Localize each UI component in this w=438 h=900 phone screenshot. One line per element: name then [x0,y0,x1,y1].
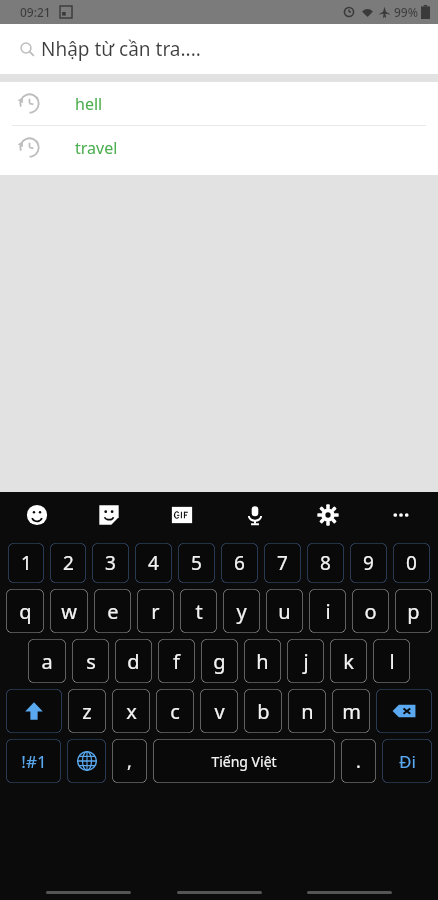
button[interactable]: o [352,589,389,633]
staticText: e [107,598,119,625]
button[interactable]: !#1 [6,739,61,783]
staticText: w [61,598,77,625]
button[interactable]: b [244,689,282,733]
button[interactable]: 8 [307,543,344,583]
button[interactable]: GIF [165,498,199,532]
staticText: a [41,648,53,675]
button[interactable]: y [223,589,260,633]
staticText: b [257,698,270,725]
button[interactable]: Emoji [20,498,54,532]
staticText: , [127,749,132,774]
staticText: x [126,698,137,725]
staticText: 99% [394,4,418,20]
staticText: r [151,598,160,625]
staticText: o [364,598,377,625]
staticText: m [342,698,361,725]
staticText: 1 [21,550,32,576]
button[interactable]: 1 [8,543,44,583]
staticText: 3 [105,550,116,576]
button[interactable]: Navigation [177,891,262,894]
staticText: d [127,648,140,675]
staticText: . [356,749,361,774]
staticText: f [173,648,180,675]
staticText: h [256,648,269,675]
other: History [18,92,41,115]
button[interactable]: More options [384,498,418,532]
button[interactable]: Tiếng Việt [153,739,335,783]
staticText: 09:21 [20,4,51,20]
staticText: Tiếng Việt [211,752,277,771]
staticText: c [170,698,180,725]
staticText: p [407,598,420,625]
staticText: g [213,648,226,675]
button[interactable]: 5 [178,543,215,583]
button[interactable]: Nhập từ cần tra.... [0,24,438,74]
button[interactable]: g [201,639,238,683]
button[interactable]: k [330,639,367,683]
button[interactable]: v [200,689,238,733]
staticText: q [19,598,32,625]
button[interactable]: Đi [382,739,432,783]
button[interactable]: s [72,639,109,683]
button[interactable]: a [28,639,66,683]
button[interactable]: Voice input [238,498,272,532]
staticText: v [214,698,225,725]
staticText: 4 [148,550,159,576]
button[interactable]: 0 [393,543,430,583]
button[interactable]: c [156,689,194,733]
staticText: hell [75,93,103,115]
button[interactable]: , [112,739,147,783]
button[interactable]: 4 [135,543,172,583]
staticText: 0 [406,550,417,576]
button[interactable]: Stickers [92,498,126,532]
button[interactable]: x [112,689,150,733]
button[interactable]: w [50,589,88,633]
staticText: i [325,598,331,625]
button[interactable]: u [266,589,303,633]
button[interactable]: Backspace [376,689,432,733]
button[interactable]: 6 [221,543,258,583]
staticText: 7 [277,550,288,576]
button[interactable]: q [6,589,44,633]
button[interactable]: n [288,689,326,733]
button[interactable]: h [244,639,281,683]
button[interactable]: p [395,589,432,633]
button[interactable]: 3 [92,543,129,583]
button[interactable]: z [68,689,106,733]
staticText: u [278,598,291,625]
staticText: k [343,648,354,675]
staticText: s [86,648,96,675]
staticText: 5 [191,550,202,576]
staticText: !#1 [21,750,47,773]
button[interactable]: j [287,639,324,683]
button[interactable]: Settings [311,498,345,532]
staticText: Đi [399,750,416,773]
button[interactable]: . [341,739,376,783]
button[interactable]: History [0,126,438,169]
button[interactable]: 9 [350,543,387,583]
button[interactable]: m [332,689,370,733]
button[interactable]: Navigation [46,891,131,894]
button[interactable]: Navigation [307,891,392,894]
button[interactable]: e [94,589,131,633]
button[interactable]: 7 [264,543,301,583]
button[interactable]: 2 [50,543,86,583]
staticText: y [236,598,247,625]
staticText: n [301,698,314,725]
staticText: 6 [234,550,245,576]
staticText: 2 [63,550,74,576]
button[interactable]: History [0,82,438,125]
button[interactable]: f [158,639,195,683]
staticText: travel [75,137,118,159]
button[interactable]: i [309,589,346,633]
staticText: 8 [320,550,331,576]
staticText: Nhập từ cần tra.... [41,36,201,62]
button[interactable]: d [115,639,152,683]
button[interactable]: l [373,639,410,683]
button[interactable]: r [137,589,174,633]
button[interactable]: Change keyboard language [67,739,106,783]
button[interactable]: t [180,589,217,633]
button[interactable]: Shift [6,689,62,733]
staticText: 9 [363,550,374,576]
staticText: j [303,648,309,675]
